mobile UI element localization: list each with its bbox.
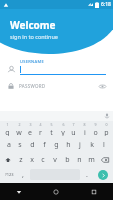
button[interactable]: Recents [75,183,113,200]
staticText: x [30,155,34,165]
other: Password [7,82,15,90]
staticText: 4 [39,122,42,127]
button[interactable]: Back [0,183,37,200]
button[interactable]: sym [2,168,16,181]
staticText: 0 [105,122,108,127]
staticText: 7 [72,122,75,127]
button[interactable]: l [99,138,109,151]
staticText: m [88,155,95,165]
staticText: 6 [62,122,65,127]
button[interactable]: 1 [2,122,12,136]
button[interactable]: 0 [102,122,111,136]
staticText: e [28,128,32,136]
staticText: 8 [83,122,86,127]
staticText: s [18,140,22,150]
button[interactable]: b [62,153,72,166]
staticText: 6:18 [101,1,111,8]
button[interactable]: d [27,138,37,151]
staticText: d [30,140,35,150]
staticText: t [50,128,53,136]
staticText: , [22,170,24,180]
staticText: i [84,128,86,136]
staticText: z [19,155,23,165]
button[interactable]: f [39,138,49,151]
staticText: Welcome [10,18,56,32]
other: Username [7,66,16,73]
staticText: w [16,128,22,136]
staticText: g [54,140,59,150]
staticText: k [90,140,94,150]
staticText: l [103,140,105,150]
button[interactable]: Home [37,183,75,200]
staticText: y [61,128,65,136]
button[interactable]: 9 [91,122,100,136]
other: Voice input [104,113,110,119]
staticText: USERNAME [20,59,44,64]
button[interactable]: 7 [69,122,78,136]
button[interactable]: z [16,153,25,166]
button[interactable]: a [4,138,13,151]
button[interactable]: s [15,138,25,151]
button[interactable]: m [86,153,96,166]
button[interactable]: 3 [25,122,34,136]
button[interactable]: 4 [36,122,45,136]
button[interactable]: . [82,168,92,181]
button[interactable]: shift [2,153,14,166]
staticText: h [66,140,71,150]
button[interactable]: 6 [58,122,67,136]
button[interactable]: Password [7,82,106,90]
button[interactable]: 8 [80,122,89,136]
button[interactable]: 2 [14,122,23,136]
staticText: 1 [6,122,9,127]
staticText: a [7,140,11,150]
button[interactable]: k [87,138,97,151]
staticText: q [5,128,10,136]
button[interactable]: Username [7,59,106,75]
staticText: PASSWORD [19,83,99,89]
button[interactable]: c [38,153,48,166]
staticText: u [71,128,76,136]
button[interactable]: Show password [99,83,106,90]
staticText: 2 [18,122,21,127]
staticText: b [65,155,70,165]
staticText: o [93,128,98,136]
staticText: 5 [50,122,53,127]
staticText: v [53,155,57,165]
button[interactable]: h [63,138,73,151]
staticText: 9 [94,122,97,127]
button[interactable]: del [98,153,111,166]
staticText: c [41,155,45,165]
button[interactable]: Enter [98,170,108,180]
staticText: 3 [29,122,32,127]
button[interactable]: n [74,153,84,166]
staticText: . [86,170,88,180]
staticText: f [43,140,46,150]
staticText: n [77,155,82,165]
staticText: p [104,128,109,136]
staticText: sign in to continue [10,33,58,40]
button[interactable]: g [51,138,61,151]
button[interactable]: j [75,138,85,151]
staticText: j [79,140,81,150]
button[interactable]: x [27,153,36,166]
staticText: r [39,128,42,136]
button[interactable]: 5 [47,122,56,136]
button[interactable]: , [18,168,28,181]
button[interactable]: v [50,153,60,166]
staticText: ?123 [5,172,14,177]
